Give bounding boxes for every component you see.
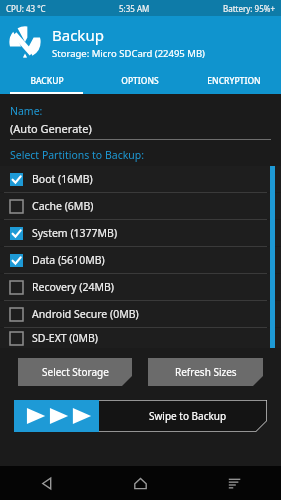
staticText: Refresh Sizes xyxy=(175,365,237,379)
button[interactable]: Recent apps xyxy=(187,466,281,500)
staticText: Battery: 95%+ xyxy=(223,3,275,14)
staticText: Data (5610MB) xyxy=(32,253,105,267)
button[interactable]: OPTIONS xyxy=(93,68,187,94)
staticText: (Auto Generate) xyxy=(10,121,92,136)
staticText: 5:35 AM xyxy=(119,3,150,14)
staticText: Boot (16MB) xyxy=(32,172,93,186)
button[interactable]: Back xyxy=(0,466,93,500)
staticText: Storage: Micro SDCard (22495 MB) xyxy=(52,47,205,60)
button[interactable]: BACKUP xyxy=(0,68,93,94)
button[interactable]: Boot (16MB) xyxy=(0,166,281,192)
staticText: Cache (6MB) xyxy=(32,199,94,213)
button[interactable]: SD-EXT (0MB) xyxy=(0,328,281,348)
button[interactable]: Refresh Sizes xyxy=(148,358,263,386)
staticText: Recovery (24MB) xyxy=(32,280,114,294)
staticText: Name: xyxy=(10,104,43,118)
staticText: OPTIONS xyxy=(121,75,159,87)
staticText: CPU: 43 °C xyxy=(6,3,46,14)
staticText: Android Secure (0MB) xyxy=(32,307,139,321)
staticText: Backup xyxy=(52,25,104,45)
button[interactable]: Swipe to Backup xyxy=(14,400,267,432)
button[interactable]: ENCRYPTION xyxy=(187,68,281,94)
staticText: System (1377MB) xyxy=(32,226,118,240)
button[interactable]: Data (5610MB) xyxy=(0,247,281,273)
staticText: ENCRYPTION xyxy=(207,75,261,87)
button[interactable]: Recovery (24MB) xyxy=(0,274,281,300)
staticText: Swipe to Backup xyxy=(149,409,227,423)
staticText: BACKUP xyxy=(30,75,64,87)
staticText: Select Storage xyxy=(42,365,109,379)
button[interactable]: (Auto Generate) xyxy=(10,121,271,140)
staticText: Select Partitions to Backup: xyxy=(10,148,145,162)
button[interactable]: Home xyxy=(93,466,187,500)
button[interactable]: Select Storage xyxy=(18,358,132,386)
button[interactable]: Cache (6MB) xyxy=(0,193,281,219)
button[interactable]: System (1377MB) xyxy=(0,220,281,246)
button[interactable]: Android Secure (0MB) xyxy=(0,301,281,327)
staticText: SD-EXT (0MB) xyxy=(32,331,99,345)
